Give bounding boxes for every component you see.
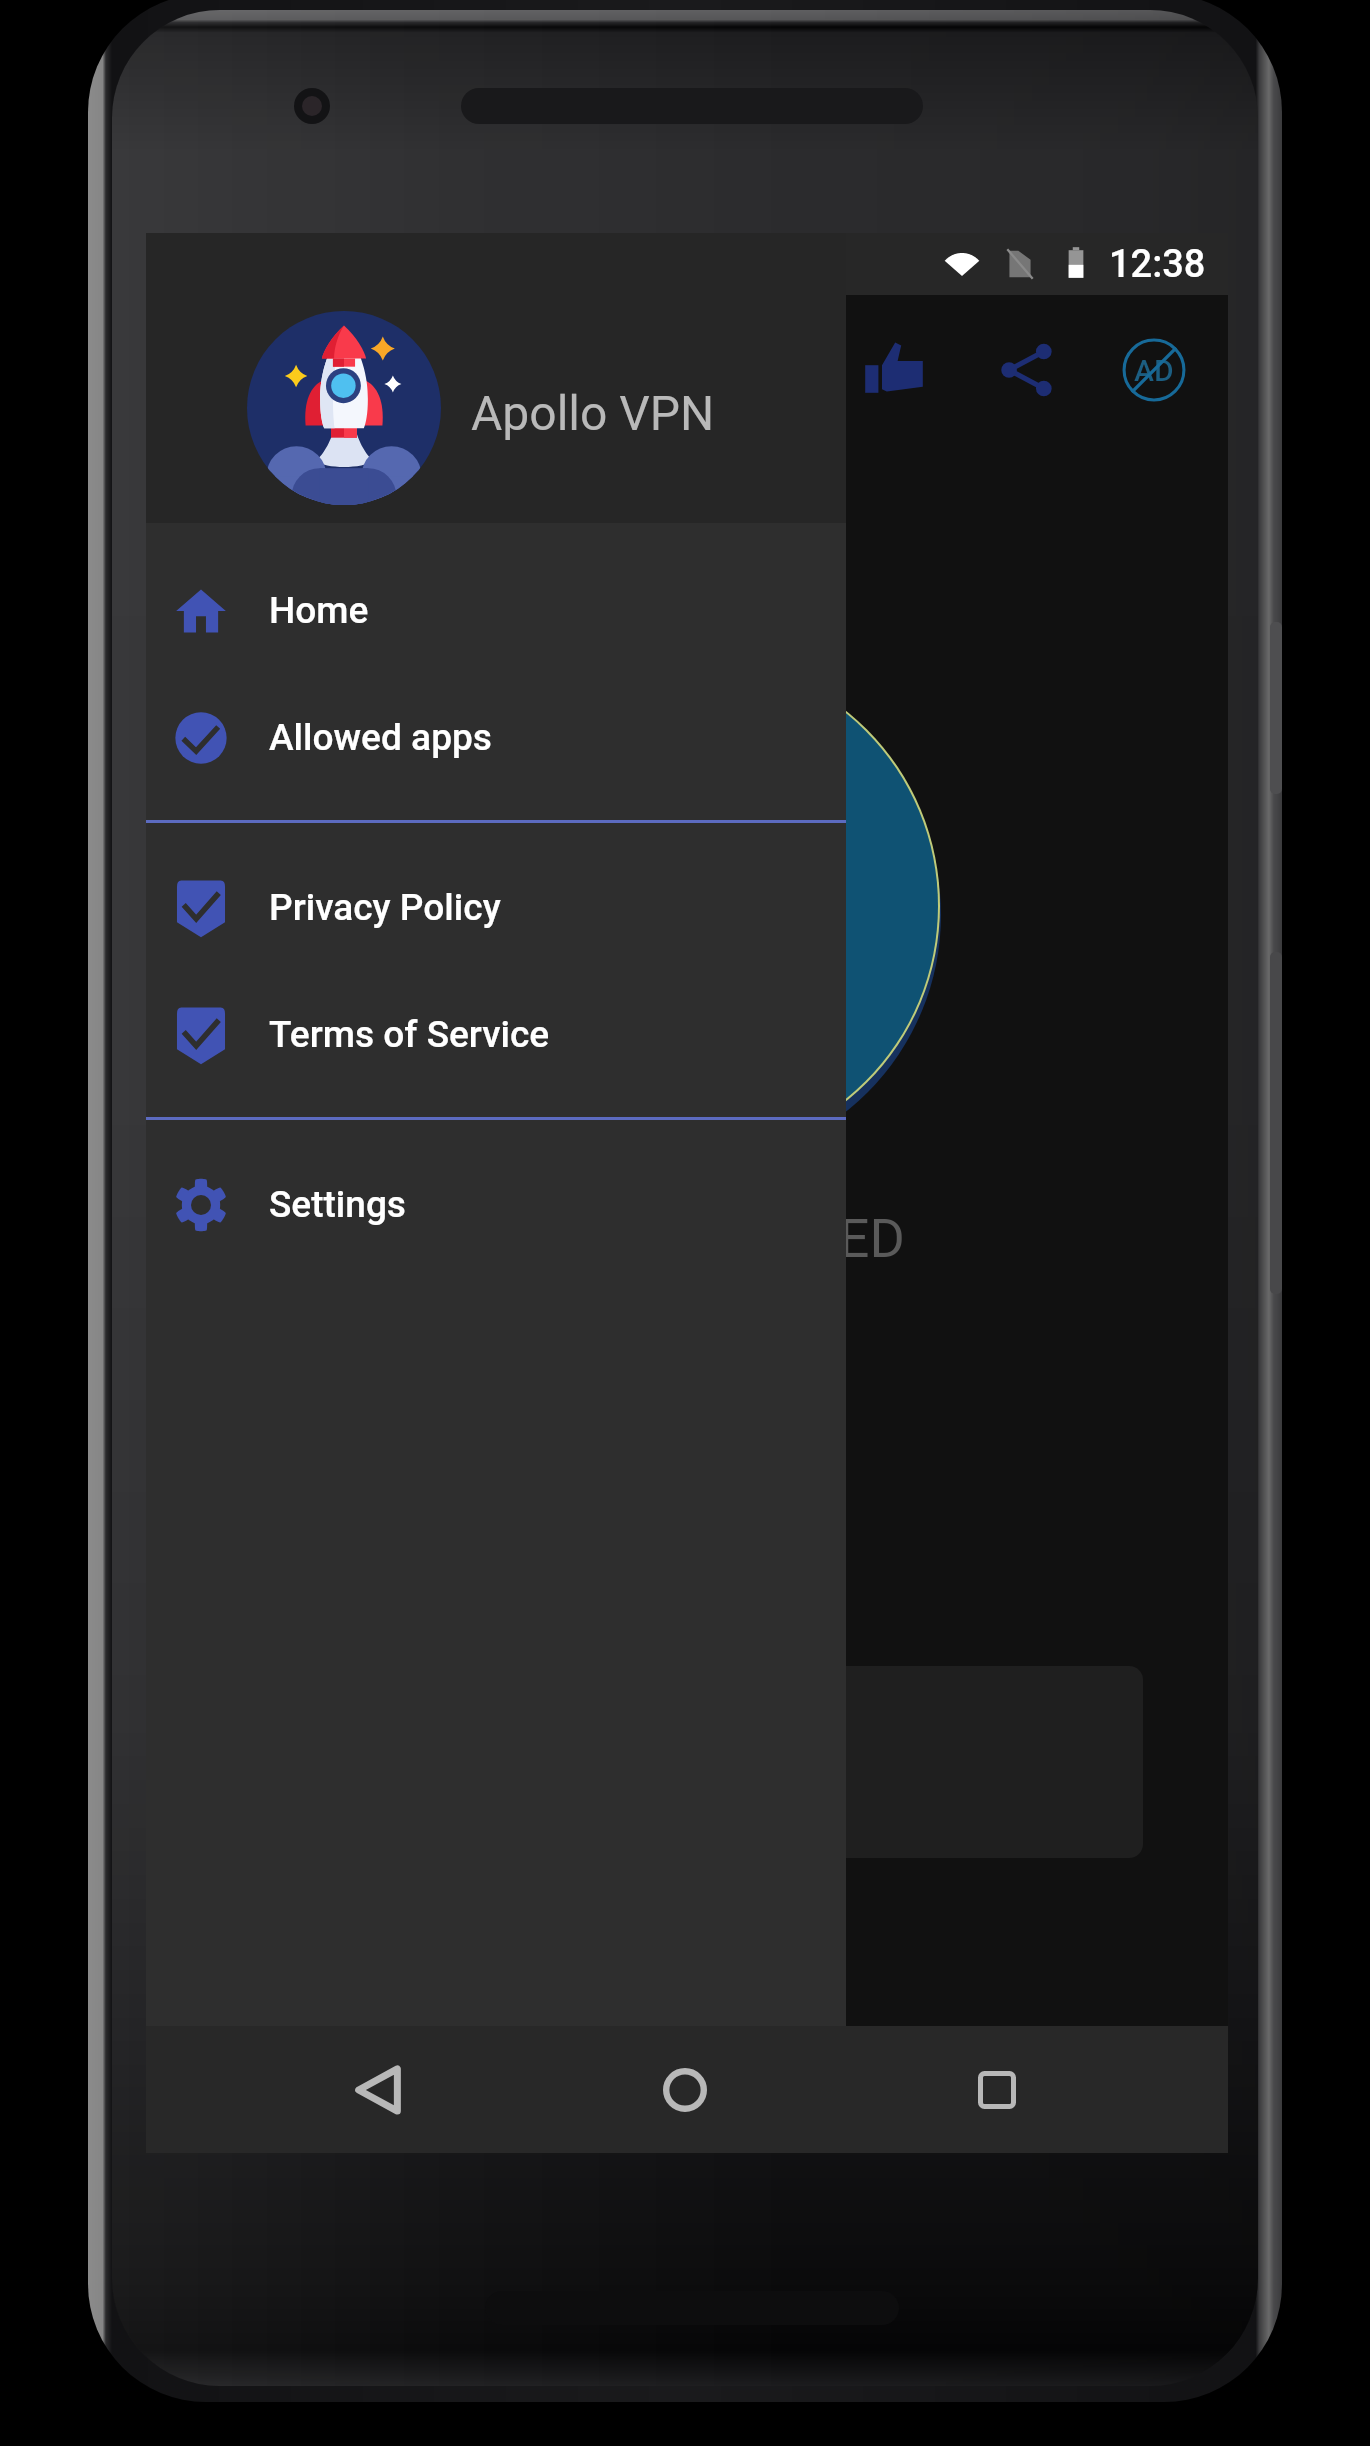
button[interactable]: Rate us — [846, 322, 942, 418]
staticText: Terms of Service — [269, 1013, 550, 1056]
button[interactable]: Share — [979, 322, 1075, 418]
staticText: Home — [269, 589, 369, 632]
button[interactable]: Back — [323, 2026, 433, 2153]
button[interactable]: Home — [630, 2026, 740, 2153]
staticText: AD — [1134, 353, 1174, 388]
staticText: Apollo VPN — [471, 385, 715, 441]
staticText: Settings — [269, 1183, 406, 1226]
staticText: Privacy Policy — [269, 886, 501, 929]
staticText: 12:38 — [1109, 242, 1206, 287]
staticText: Allowed apps — [269, 716, 492, 759]
staticText: DISCONNECTED — [510, 1207, 905, 1270]
button[interactable]: Settings — [146, 1141, 846, 1268]
button[interactable]: Privacy Policy — [146, 844, 846, 971]
button[interactable]: Remove ads — [1102, 318, 1206, 422]
button[interactable]: Terms of Service — [146, 971, 846, 1098]
button[interactable]: Recent apps — [942, 2026, 1052, 2153]
button[interactable]: Home — [146, 547, 846, 674]
button[interactable]: Allowed apps — [146, 674, 846, 801]
